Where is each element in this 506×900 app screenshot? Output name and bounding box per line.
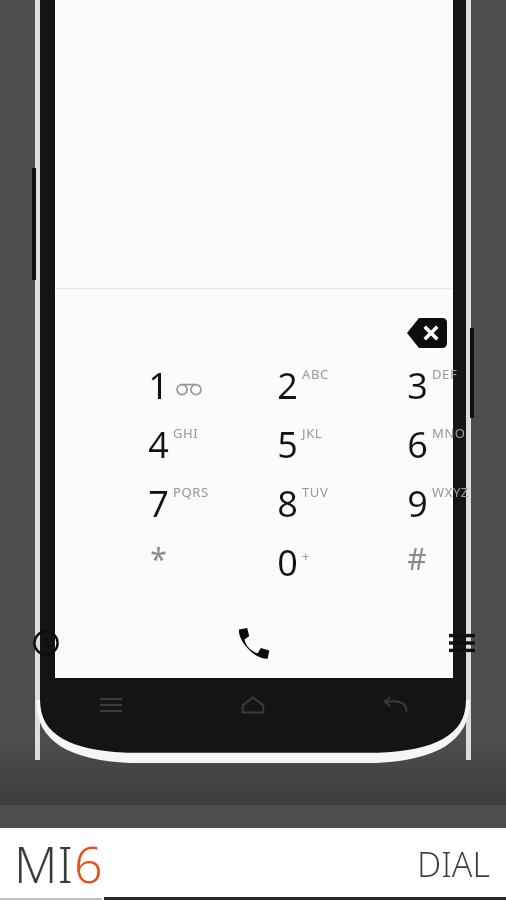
button[interactable]: Home: [182, 678, 324, 732]
staticText: JKL: [302, 424, 323, 442]
staticText: DEF: [432, 365, 458, 383]
button[interactable]: Call: [187, 608, 320, 678]
staticText: 7: [148, 479, 169, 528]
button[interactable]: More options: [320, 608, 453, 678]
staticText: ABC: [302, 365, 329, 383]
button[interactable]: Backspace: [399, 312, 455, 354]
staticText: MI: [14, 830, 74, 898]
staticText: *: [150, 538, 167, 579]
button[interactable]: [372, 522, 492, 578]
button[interactable]: [242, 345, 362, 401]
staticText: 2: [277, 361, 298, 410]
button[interactable]: [242, 522, 362, 578]
staticText: +: [302, 547, 311, 565]
staticText: WXYZ: [432, 483, 469, 501]
button[interactable]: [372, 345, 492, 401]
staticText: 3: [407, 361, 428, 410]
button[interactable]: Call history: [55, 608, 187, 678]
staticText: MNO: [432, 424, 466, 442]
staticText: PQRS: [173, 483, 209, 501]
staticText: GHI: [173, 424, 199, 442]
button[interactable]: [372, 404, 492, 460]
button[interactable]: [372, 463, 492, 519]
staticText: 5: [277, 420, 298, 469]
staticText: #: [407, 538, 427, 579]
button[interactable]: [113, 463, 233, 519]
staticText: 0: [277, 538, 298, 587]
button[interactable]: [113, 345, 233, 401]
staticText: DIAL: [417, 841, 490, 887]
button[interactable]: Back: [324, 678, 466, 732]
button[interactable]: Menu: [40, 678, 182, 732]
button[interactable]: [242, 463, 362, 519]
staticText: 9: [407, 479, 428, 528]
staticText: 8: [277, 479, 298, 528]
staticText: TUV: [302, 483, 329, 501]
button[interactable]: [242, 404, 362, 460]
staticText: 1: [148, 361, 169, 410]
staticText: 6: [407, 420, 428, 469]
staticText: 4: [148, 420, 169, 469]
button[interactable]: [113, 522, 233, 578]
staticText: 6: [74, 830, 103, 898]
button[interactable]: [113, 404, 233, 460]
